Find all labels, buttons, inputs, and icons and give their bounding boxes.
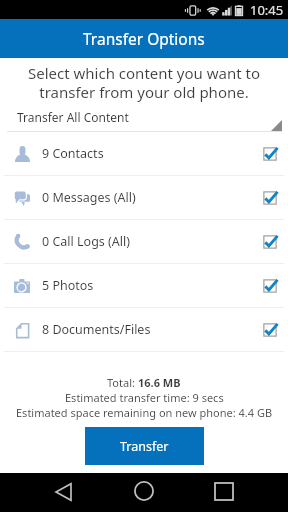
- staticText: 0 Call Logs (All): [42, 233, 130, 250]
- staticText: Transfer: [120, 438, 169, 455]
- button[interactable]: Back: [55, 473, 135, 512]
- button[interactable]: Transfer All Content: [7, 109, 282, 132]
- button[interactable]: 5 Photos: [0, 264, 288, 308]
- staticText: 5 Photos: [42, 277, 94, 294]
- staticText: 16.6 MB: [138, 375, 181, 390]
- staticText: 0 Messages (All): [42, 189, 136, 206]
- button[interactable]: 0 Messages (All): [0, 176, 288, 220]
- staticText: 9 Contacts: [42, 145, 104, 162]
- staticText: Estimated space remaining on new phone: …: [16, 405, 273, 420]
- staticText: Select which content you want to transfe…: [0, 63, 288, 102]
- staticText: Transfer All Content: [17, 109, 129, 125]
- button[interactable]: Home: [109, 473, 179, 512]
- staticText: 10:45: [250, 1, 284, 19]
- button[interactable]: 8 Documents/Files: [0, 308, 288, 352]
- button[interactable]: 9 Contacts: [0, 132, 288, 176]
- button[interactable]: 0 Call Logs (All): [0, 220, 288, 264]
- staticText: Estimated transfer time: 9 secs: [65, 390, 224, 405]
- staticText: Total:: [107, 375, 138, 390]
- staticText: 8 Documents/Files: [42, 321, 151, 338]
- staticText: Transfer Options: [83, 28, 205, 49]
- button[interactable]: Transfer: [85, 427, 204, 465]
- button[interactable]: Recents: [155, 473, 233, 512]
